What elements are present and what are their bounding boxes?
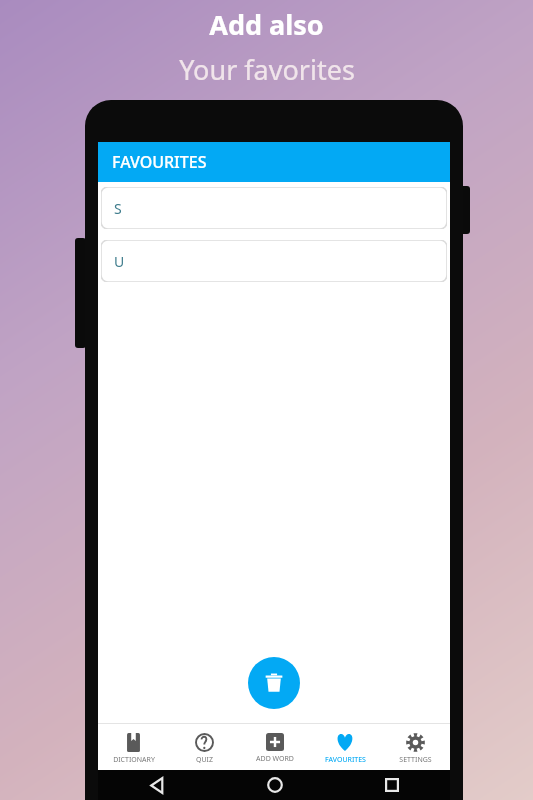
button[interactable]: U [101,240,447,282]
button[interactable]: Home [260,770,290,800]
staticText: U [114,252,125,271]
staticText: Add also [209,6,324,43]
button[interactable]: Delete favourites [248,657,300,709]
staticText: FAVOURITES [112,151,207,173]
staticText: S [114,199,122,218]
button[interactable]: DICTIONARY [98,730,169,765]
button[interactable]: S [101,187,447,229]
button[interactable]: QUIZ [169,730,240,765]
button[interactable]: Recent apps [377,770,407,800]
staticText: SETTINGS [399,755,432,765]
button[interactable]: Back [142,770,172,800]
button[interactable]: FAVOURITES [98,142,450,182]
staticText: DICTIONARY [113,755,155,765]
button[interactable]: SETTINGS [380,730,450,765]
staticText: Your favorites [179,51,355,88]
button[interactable]: FAVOURITES [310,729,380,765]
staticText: ADD WORD [256,754,294,764]
button[interactable]: ADD WORD [240,730,310,764]
staticText: QUIZ [196,755,213,765]
staticText: FAVOURITES [325,755,366,765]
